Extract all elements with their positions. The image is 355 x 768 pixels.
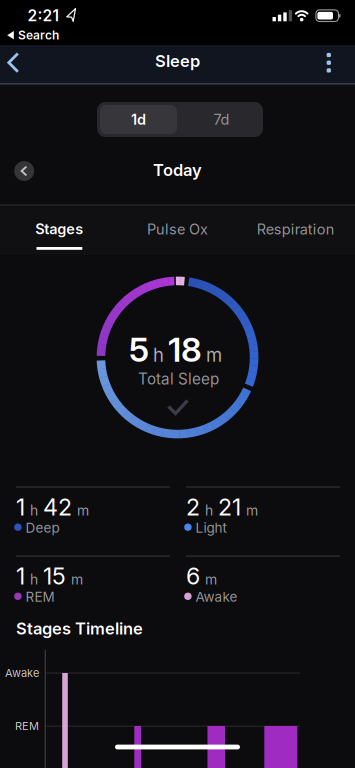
staticText: 18 xyxy=(168,329,202,370)
staticText: m xyxy=(246,502,258,519)
button[interactable]: Back xyxy=(2,51,24,74)
staticText: m xyxy=(77,502,89,519)
staticText: REM xyxy=(25,589,54,605)
staticText: 6 xyxy=(186,562,200,590)
staticText: 2 xyxy=(186,493,200,521)
staticText: 42 xyxy=(43,493,72,521)
staticText: h xyxy=(30,571,38,588)
staticText: 5 xyxy=(129,329,149,370)
button[interactable]: Previous day xyxy=(14,161,34,181)
button[interactable]: Respiration xyxy=(237,204,355,254)
staticText: h xyxy=(205,502,213,519)
staticText: Respiration xyxy=(257,220,335,238)
staticText: Today xyxy=(153,160,202,180)
staticText: REM xyxy=(15,719,39,733)
staticText: 21 xyxy=(218,493,241,521)
staticText: m xyxy=(206,344,222,366)
staticText: Awake xyxy=(5,666,39,680)
button[interactable]: Pulse Ox xyxy=(118,204,237,254)
button[interactable]: Stages xyxy=(0,204,118,255)
button[interactable]: Search xyxy=(5,30,69,40)
staticText: 1d xyxy=(131,111,146,128)
staticText: 2:21 xyxy=(27,6,59,25)
staticText: 15 xyxy=(43,562,66,590)
staticText: Search xyxy=(18,28,59,42)
staticText: 1 xyxy=(16,493,25,521)
staticText: Pulse Ox xyxy=(147,220,208,238)
staticText: Total Sleep xyxy=(138,370,219,388)
staticText: m xyxy=(71,571,83,588)
staticText: Stages xyxy=(35,220,83,238)
staticText: h xyxy=(153,344,164,366)
button[interactable]: More options xyxy=(318,51,340,75)
staticText: 1 xyxy=(16,562,25,590)
staticText: Awake xyxy=(195,589,237,605)
staticText: 7d xyxy=(213,111,229,128)
button[interactable]: 1d xyxy=(97,102,180,137)
staticText: Sleep xyxy=(155,51,200,71)
staticText: Light xyxy=(195,520,226,536)
staticText: Stages Timeline xyxy=(16,618,143,638)
staticText: Deep xyxy=(25,520,59,536)
staticText: h xyxy=(30,502,38,519)
button[interactable]: 7d xyxy=(180,102,263,137)
staticText: m xyxy=(205,571,217,588)
